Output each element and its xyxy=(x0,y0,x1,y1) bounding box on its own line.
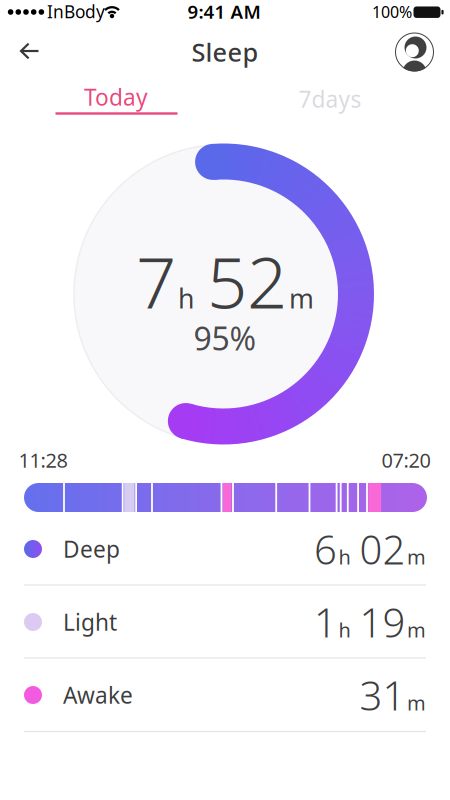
staticText: m xyxy=(289,280,314,316)
staticText: 19 xyxy=(359,595,405,648)
staticText: 7days xyxy=(298,84,361,114)
staticText: 100% xyxy=(372,1,412,22)
staticText: h xyxy=(338,616,350,643)
button[interactable]: Awake xyxy=(24,658,426,731)
staticText: m xyxy=(407,543,426,570)
staticText: InBody xyxy=(47,0,105,23)
staticText: Sleep xyxy=(191,35,258,69)
staticText: Light xyxy=(63,607,117,637)
button[interactable]: Back xyxy=(8,36,52,66)
staticText: h xyxy=(338,543,350,570)
staticText: m xyxy=(407,616,426,643)
staticText: 1 xyxy=(314,595,337,648)
button[interactable]: Today xyxy=(36,80,196,114)
staticText: 95% xyxy=(193,317,256,359)
staticText: Awake xyxy=(63,680,133,710)
staticText: 7 xyxy=(136,234,176,328)
button[interactable]: Deep xyxy=(24,512,426,585)
button[interactable]: Profile xyxy=(395,32,434,71)
staticText: Deep xyxy=(63,534,120,564)
staticText: 6 xyxy=(314,522,337,575)
staticText: 52 xyxy=(207,234,287,328)
staticText: Today xyxy=(84,82,148,112)
staticText: 11:28 xyxy=(18,447,67,473)
staticText: h xyxy=(178,280,194,316)
staticText: 02 xyxy=(359,522,405,575)
button[interactable]: Light xyxy=(24,585,426,658)
button[interactable]: 7days xyxy=(270,79,390,119)
staticText: 07:20 xyxy=(381,447,430,473)
staticText: 31 xyxy=(359,668,405,721)
staticText: 9:41 AM xyxy=(187,0,260,24)
staticText: m xyxy=(407,689,426,716)
